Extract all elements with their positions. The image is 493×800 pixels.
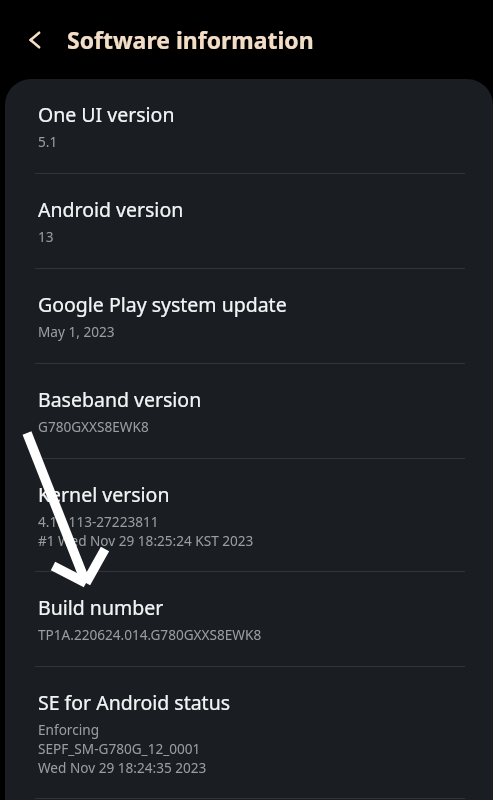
- button[interactable]: Build number: [5, 572, 493, 667]
- button[interactable]: Baseband version: [5, 364, 493, 459]
- staticText: SEPF_SM-G780G_12_0001: [38, 739, 201, 758]
- staticText: Wed Nov 29 18:24:35 2023: [38, 758, 207, 777]
- staticText: One UI version: [38, 101, 175, 128]
- staticText: Google Play system update: [38, 291, 287, 318]
- staticText: Android version: [38, 196, 184, 223]
- button[interactable]: Google Play system update: [5, 269, 493, 364]
- staticText: Baseband version: [38, 386, 202, 413]
- staticText: 4.19.113-27223811: [38, 512, 159, 531]
- button[interactable]: Kernel version: [5, 459, 493, 572]
- staticText: Kernel version: [38, 481, 170, 508]
- staticText: Software information: [67, 24, 314, 55]
- button[interactable]: Android version: [5, 174, 493, 269]
- staticText: SE for Android status: [38, 689, 231, 716]
- staticText: TP1A.220624.014.G780GXXS8EWK8: [38, 625, 262, 644]
- staticText: G780GXXS8EWK8: [38, 417, 149, 436]
- button[interactable]: Navigate up: [12, 17, 58, 63]
- button[interactable]: One UI version: [5, 79, 493, 174]
- staticText: May 1, 2023: [38, 322, 115, 341]
- staticText: Build number: [38, 594, 164, 621]
- staticText: Enforcing: [38, 720, 99, 739]
- staticText: #1 Wed Nov 29 18:25:24 KST 2023: [38, 531, 254, 550]
- staticText: 13: [38, 227, 54, 246]
- staticText: 5.1: [38, 132, 58, 151]
- button[interactable]: SE for Android status: [5, 667, 493, 799]
